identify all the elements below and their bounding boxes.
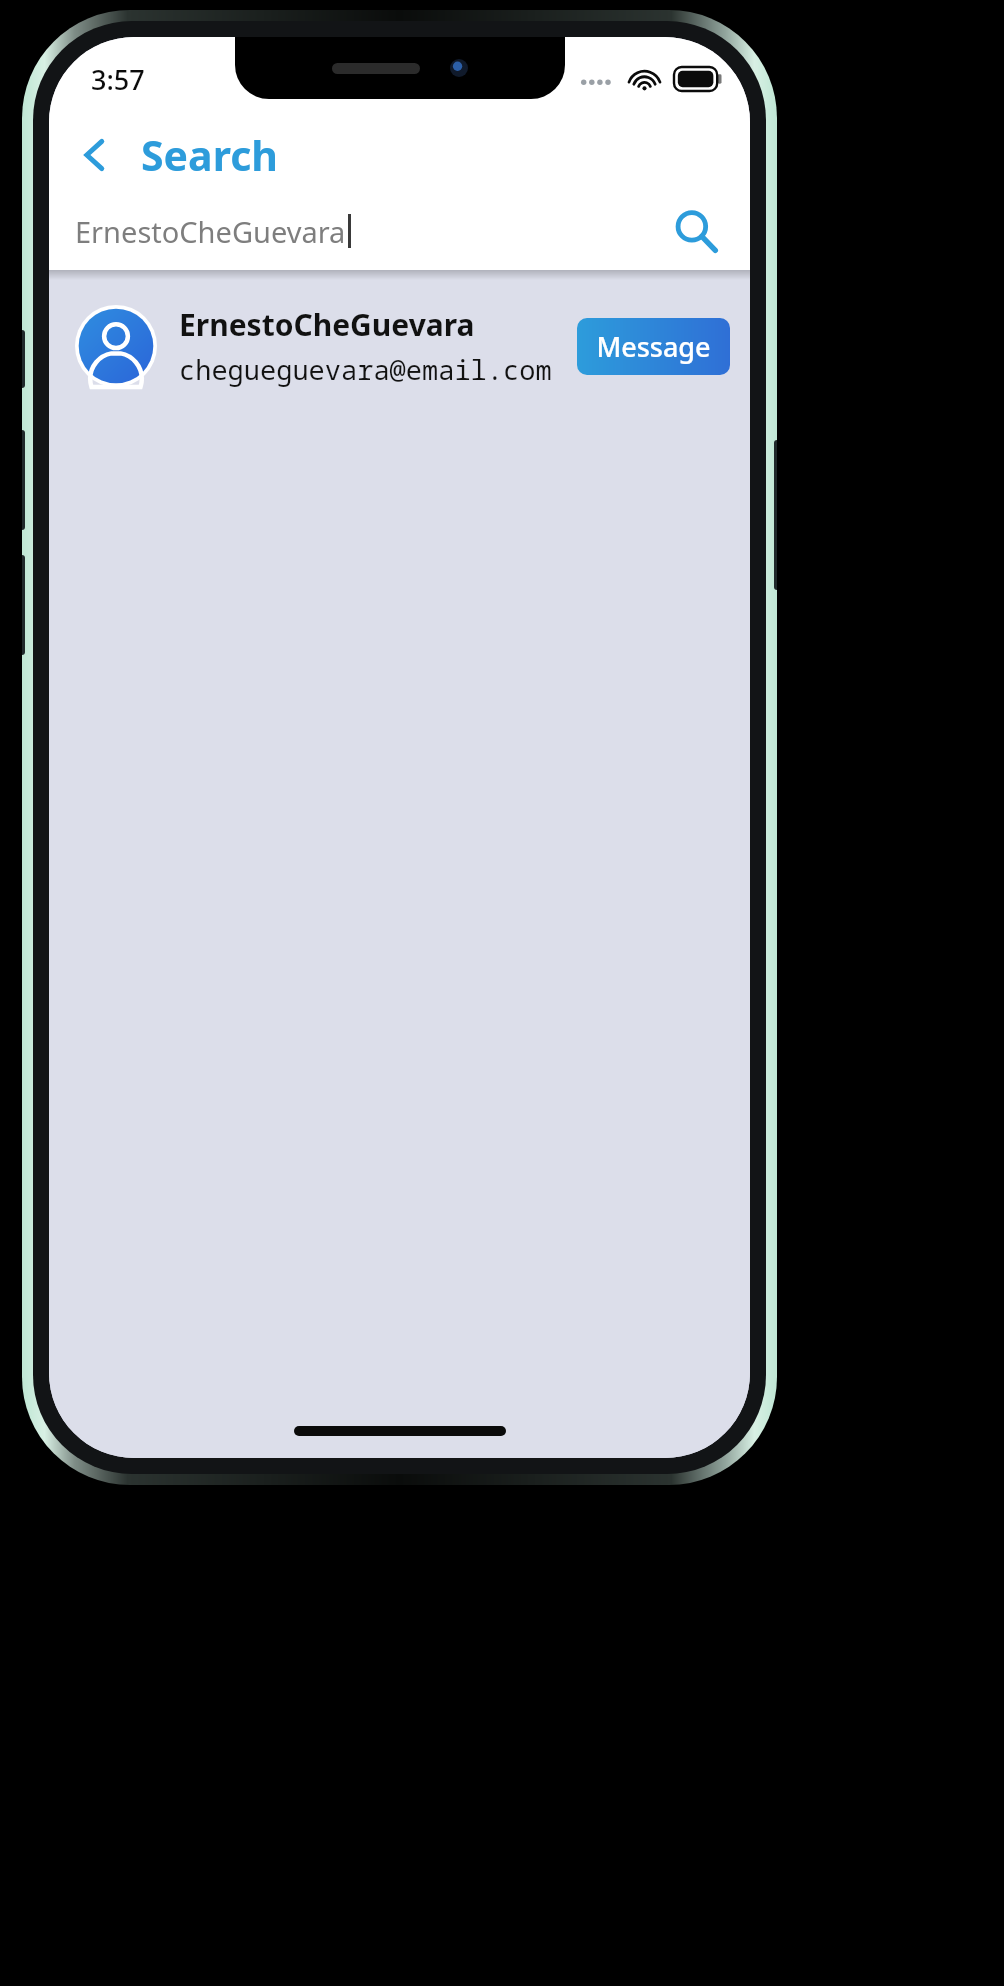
button[interactable]: ErnestoCheGuevara — [49, 292, 750, 400]
button[interactable]: Message — [577, 318, 730, 375]
staticText: Search — [141, 127, 278, 183]
button[interactable]: ErnestoCheGuevara — [75, 197, 664, 265]
staticText: ErnestoCheGuevara — [179, 304, 475, 345]
staticText: Message — [596, 328, 711, 365]
staticText: 3:57 — [91, 61, 145, 98]
staticText: ErnestoCheGuevara — [75, 212, 346, 251]
button[interactable]: Search — [664, 199, 728, 263]
button[interactable]: Back — [67, 127, 123, 183]
staticText: chegueguevara@email.com — [179, 351, 552, 388]
